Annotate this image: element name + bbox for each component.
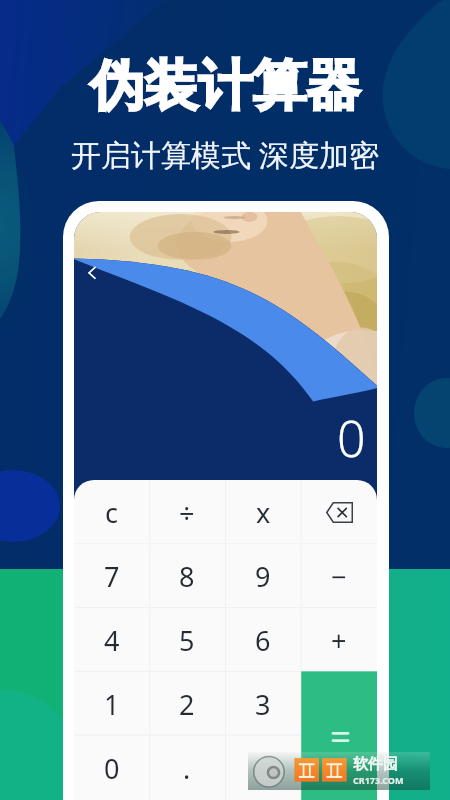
staticText: 0 <box>337 404 366 472</box>
button[interactable]: 0 <box>74 736 149 800</box>
other: Delete <box>326 502 353 523</box>
button[interactable]: 8 <box>149 544 225 608</box>
button[interactable] <box>301 736 377 800</box>
staticText: 1 <box>104 686 120 723</box>
staticText: c <box>105 494 118 531</box>
staticText: x <box>256 494 271 531</box>
staticText: 0 <box>104 750 120 787</box>
button[interactable]: Equals <box>302 672 377 800</box>
staticText: CR173.COM <box>353 774 404 786</box>
other: Equals <box>333 732 348 742</box>
button[interactable]: 1 <box>74 672 149 736</box>
staticText: 5 <box>179 622 195 659</box>
staticText: 3 <box>255 686 271 723</box>
button[interactable]: 9 <box>225 544 301 608</box>
staticText: ÷ <box>179 494 195 531</box>
staticText: . <box>183 750 191 787</box>
staticText: − <box>331 558 347 595</box>
staticText: 开启计算模式 深度加密 <box>71 134 379 175</box>
button[interactable]: Delete <box>301 480 377 544</box>
staticText: 9 <box>255 558 271 595</box>
staticText: 伪装计算器 <box>90 52 360 120</box>
button[interactable]: c <box>74 480 149 544</box>
button[interactable]: . <box>149 736 225 800</box>
button[interactable] <box>225 736 301 800</box>
button[interactable]: + <box>301 608 377 672</box>
staticText: 软件园 <box>353 755 398 774</box>
button[interactable]: ÷ <box>149 480 225 544</box>
staticText: 8 <box>179 558 195 595</box>
staticText: 6 <box>255 622 271 659</box>
button[interactable]: 2 <box>149 672 225 736</box>
button[interactable]: 4 <box>74 608 149 672</box>
staticText: 2 <box>179 686 195 723</box>
button[interactable] <box>301 672 377 736</box>
button[interactable]: x <box>225 480 301 544</box>
staticText: 4 <box>104 622 120 659</box>
button[interactable]: 5 <box>149 608 225 672</box>
button[interactable]: 6 <box>225 608 301 672</box>
staticText: + <box>331 622 347 659</box>
button[interactable]: 7 <box>74 544 149 608</box>
button[interactable]: 3 <box>225 672 301 736</box>
button[interactable]: − <box>301 544 377 608</box>
staticText: 7 <box>104 558 120 595</box>
